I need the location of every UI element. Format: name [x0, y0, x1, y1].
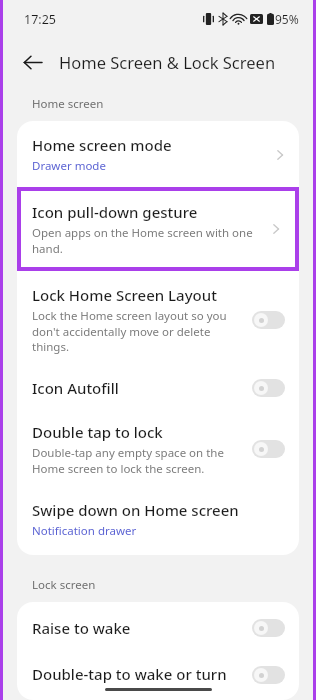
button[interactable]: Icon pull-down gesture: [21, 191, 295, 267]
staticText: Home Screen & Lock Screen: [59, 51, 276, 73]
button[interactable]: Swipe down on Home screen: [17, 488, 299, 555]
staticText: 17:25: [24, 11, 56, 28]
staticText: Double-tap to wake or turn off screen: [32, 664, 242, 686]
staticText: Open apps on the Home screen with one ha…: [32, 225, 261, 256]
staticText: Double-tap any empty space on the Home s…: [32, 445, 242, 476]
staticText: Swipe down on Home screen: [32, 500, 239, 520]
button[interactable]: Home screen mode: [17, 121, 299, 187]
button[interactable]: Icon pull-down gesture: [21, 191, 295, 267]
staticText: Lock screen: [32, 577, 96, 593]
staticText: Lock the Home screen layout so you don't…: [32, 308, 242, 354]
button[interactable]: Lock Home Screen Layout: [17, 275, 299, 366]
staticText: Icon Autofill: [32, 378, 119, 398]
button[interactable]: Toggle: [252, 619, 285, 637]
staticText: Double tap to lock: [32, 422, 163, 442]
button[interactable]: Toggle: [252, 666, 285, 684]
staticText: Notification drawer: [32, 523, 137, 539]
button[interactable]: Toggle: [252, 440, 285, 458]
button[interactable]: Raise to wake: [17, 602, 299, 652]
button[interactable]: Double-tap to wake or turn off screen: [17, 652, 299, 700]
staticText: Lock Home Screen Layout: [32, 285, 217, 305]
button[interactable]: Back: [15, 45, 49, 79]
staticText: Home screen mode: [32, 135, 172, 155]
button[interactable]: Double tap to lock: [17, 410, 299, 488]
staticText: Drawer mode: [32, 158, 106, 174]
staticText: 95%: [275, 11, 299, 27]
button[interactable]: Toggle: [252, 379, 285, 397]
staticText: Raise to wake: [32, 618, 131, 638]
staticText: Home screen: [32, 96, 104, 112]
button[interactable]: Icon Autofill: [17, 366, 299, 410]
staticText: Icon pull-down gesture: [32, 202, 198, 222]
button[interactable]: Toggle: [252, 311, 285, 329]
